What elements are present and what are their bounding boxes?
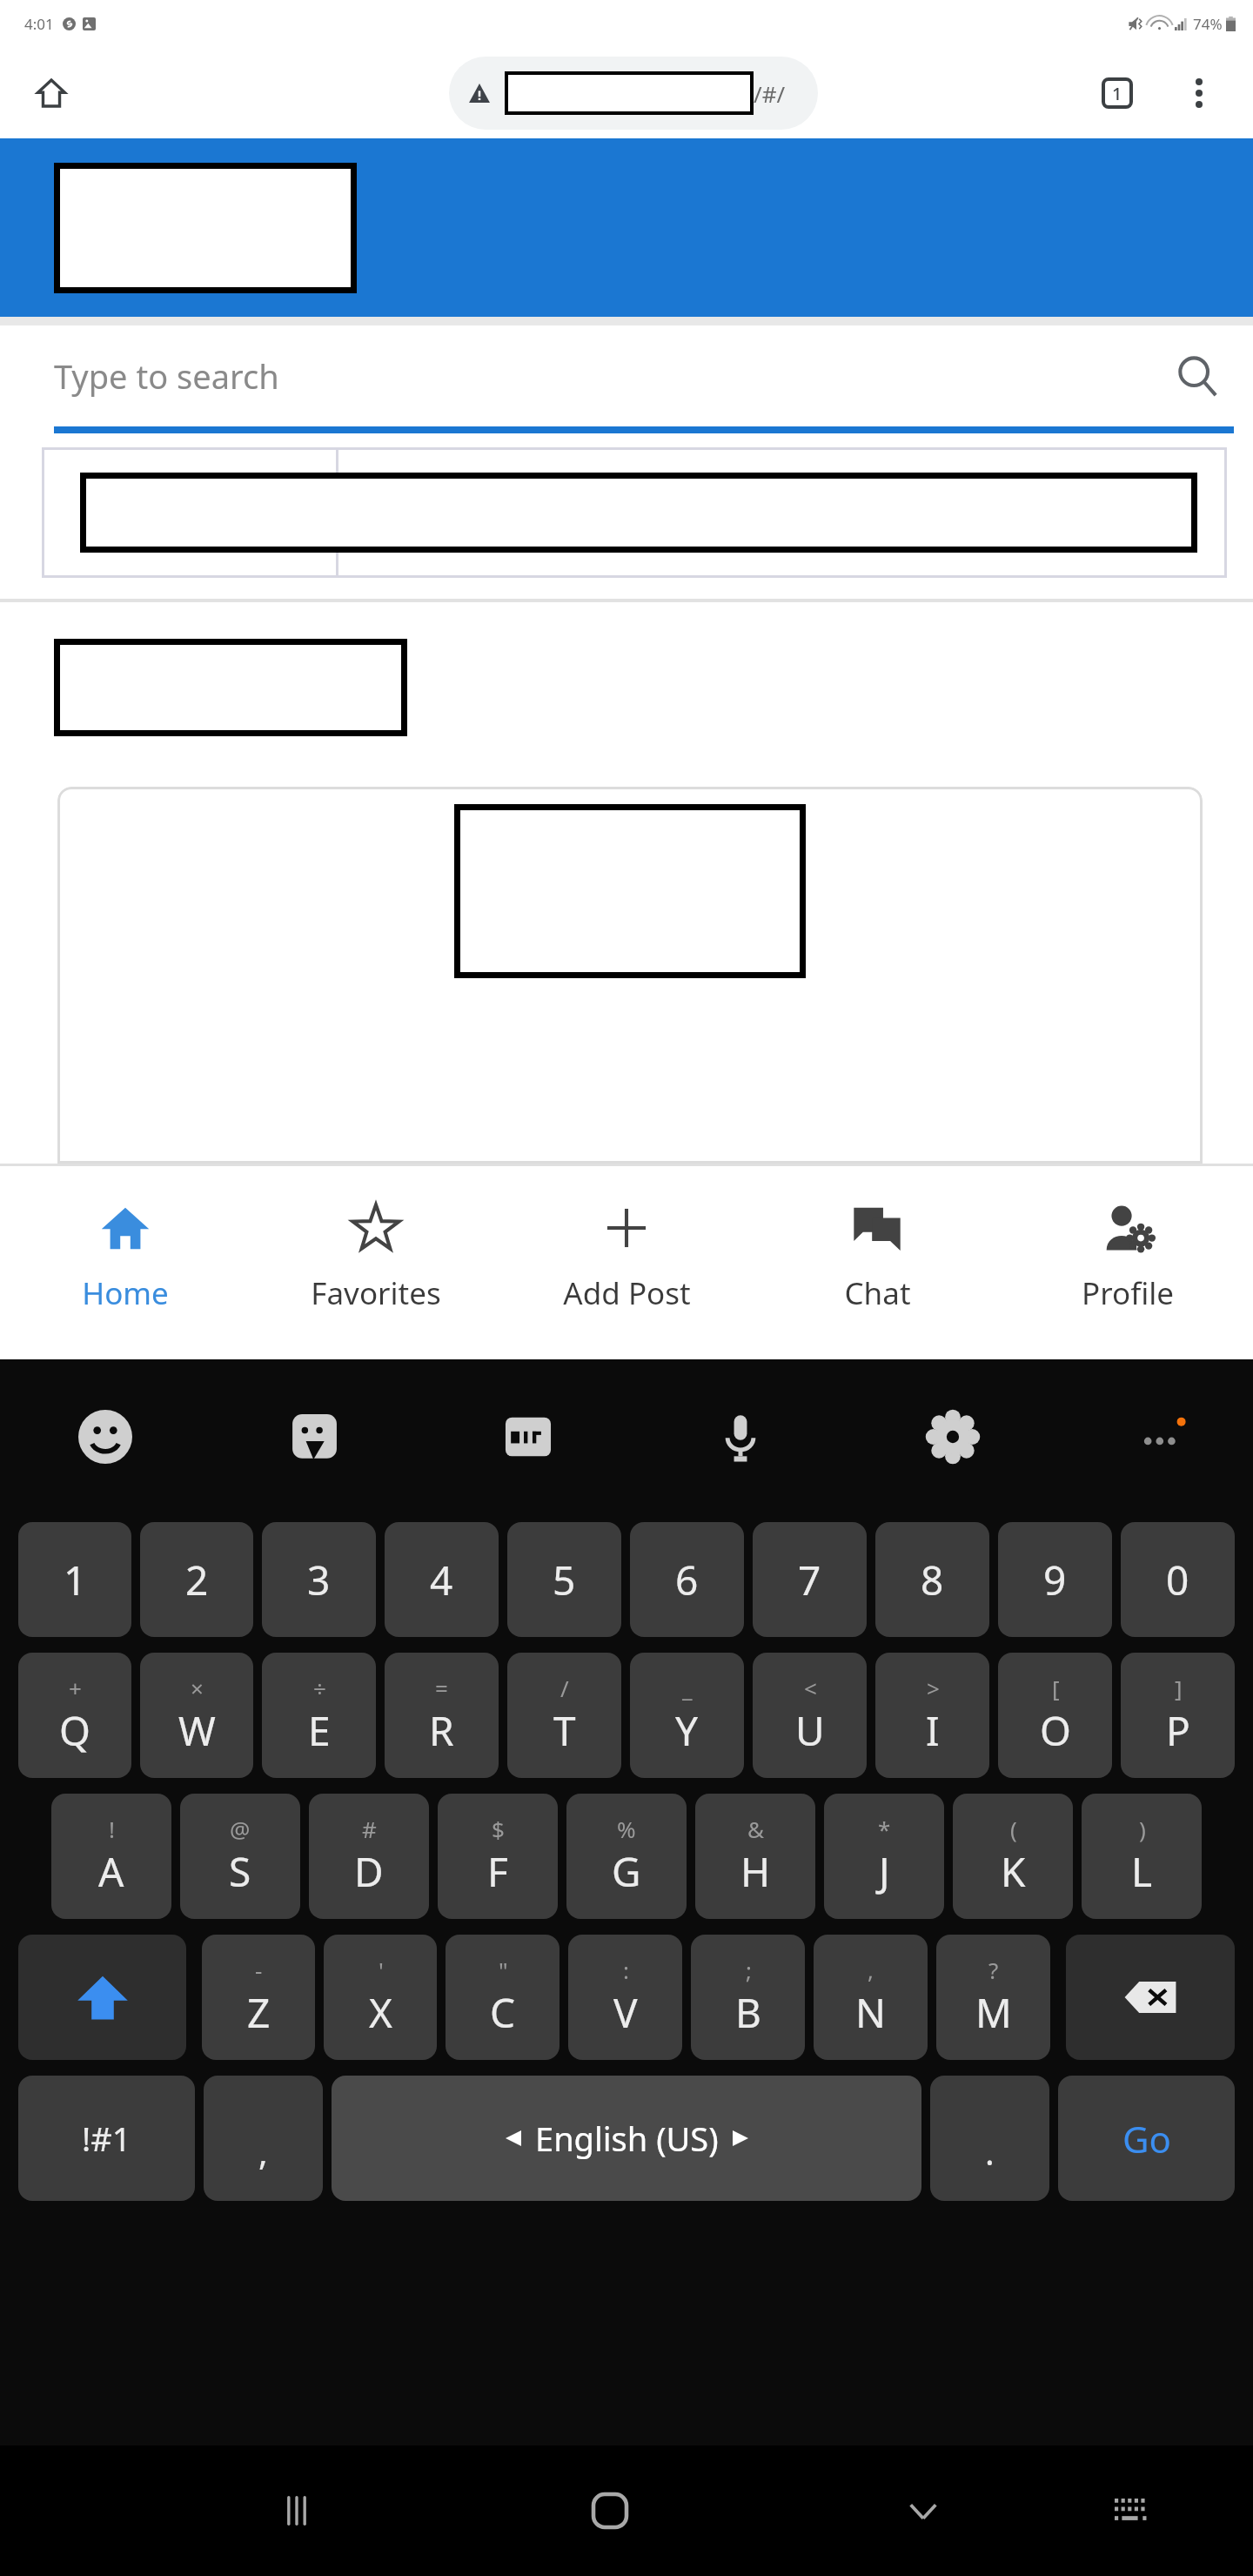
button[interactable]: = <box>385 1653 499 1778</box>
button[interactable]: 9 <box>998 1522 1112 1637</box>
button[interactable]: Add Post <box>501 1166 752 1359</box>
button[interactable]: + <box>18 1653 131 1778</box>
staticText: L <box>1131 1844 1153 1899</box>
button[interactable]: Home <box>28 70 75 117</box>
button[interactable]: Tabs, 1 open <box>1093 69 1142 117</box>
button[interactable]: Favorites <box>251 1166 501 1359</box>
button[interactable]: : <box>568 1935 682 2060</box>
staticText: X <box>369 1985 392 2040</box>
staticText: 6 <box>675 1553 699 1607</box>
button[interactable]: Emoji <box>68 1399 143 1474</box>
staticText: = <box>435 1673 448 1703</box>
button[interactable]: Recents <box>258 2472 336 2550</box>
button[interactable]: * <box>824 1794 944 1919</box>
button[interactable]: Voice input <box>703 1399 778 1474</box>
button[interactable]: ? <box>936 1935 1050 2060</box>
button[interactable]: < <box>753 1653 867 1778</box>
button[interactable]: × <box>140 1653 253 1778</box>
button[interactable]: , <box>814 1935 928 2060</box>
button[interactable]: !#1 <box>18 2076 195 2201</box>
staticText: I <box>926 1703 940 1758</box>
button[interactable]: More options <box>1175 69 1223 117</box>
button[interactable]: Profile <box>1002 1166 1253 1359</box>
button[interactable]: Hide keyboard <box>884 2472 962 2550</box>
staticText: 7 <box>798 1553 821 1607</box>
staticText: _ <box>682 1673 693 1703</box>
button[interactable]: % <box>566 1794 687 1919</box>
button[interactable]: Home <box>0 1166 251 1359</box>
button[interactable]: ] <box>1121 1653 1235 1778</box>
button[interactable]: GIF <box>491 1399 566 1474</box>
staticText: U <box>795 1703 825 1758</box>
button[interactable]: Keyboard settings <box>915 1399 990 1474</box>
button[interactable]: _ <box>630 1653 744 1778</box>
staticText: - <box>255 1955 263 1985</box>
button[interactable]: - <box>202 1935 315 2060</box>
button[interactable]: / <box>507 1653 621 1778</box>
button[interactable]: More <box>1128 1399 1203 1474</box>
staticText: R <box>429 1703 454 1758</box>
button[interactable]: # <box>309 1794 429 1919</box>
button[interactable]: Stickers <box>279 1399 354 1474</box>
button[interactable]: Go <box>1058 2076 1235 2201</box>
staticText: ; <box>746 1955 752 1985</box>
button[interactable]: Home <box>571 2472 649 2550</box>
button[interactable]: 7 <box>753 1522 867 1637</box>
button[interactable]: Switch keyboard <box>1092 2472 1170 2550</box>
staticText: J <box>879 1844 890 1899</box>
button[interactable]: ) <box>1082 1794 1202 1919</box>
button[interactable]: ' <box>324 1935 437 2060</box>
button[interactable]: Shift <box>18 1935 186 2060</box>
button[interactable]: 3 <box>262 1522 376 1637</box>
button[interactable]: Type to search <box>54 325 1218 426</box>
button[interactable]: @ <box>180 1794 300 1919</box>
staticText: 1 <box>1112 82 1122 105</box>
staticText: !#1 <box>82 2116 131 2161</box>
staticText: × <box>191 1673 204 1703</box>
staticText: Add Post <box>563 1272 691 1314</box>
staticText: ) <box>1139 1814 1146 1844</box>
staticText: 9 <box>1043 1553 1067 1607</box>
button[interactable]: Chat <box>752 1166 1002 1359</box>
button[interactable]: $ <box>438 1794 558 1919</box>
staticText: N <box>855 1985 886 2040</box>
button[interactable]: 0 <box>1121 1522 1235 1637</box>
staticText: : <box>623 1955 629 1985</box>
button[interactable]: 8 <box>875 1522 989 1637</box>
button[interactable]: 5 <box>507 1522 621 1637</box>
staticText: Chat <box>844 1272 911 1314</box>
staticText: ( <box>1010 1814 1017 1844</box>
staticText: Q <box>59 1703 90 1758</box>
staticText: ? <box>988 1955 999 1985</box>
staticText: 5 <box>553 1553 576 1607</box>
button[interactable]: /#/ <box>449 57 818 130</box>
button[interactable]: [ <box>998 1653 1112 1778</box>
staticText: Type to search <box>54 353 279 399</box>
staticText: English (US) <box>535 2116 719 2161</box>
staticText: W <box>178 1703 216 1758</box>
button[interactable]: 4 <box>385 1522 499 1637</box>
button[interactable]: ! <box>51 1794 171 1919</box>
button[interactable]: . <box>930 2076 1049 2201</box>
button[interactable]: " <box>446 1935 559 2060</box>
button[interactable]: ; <box>691 1935 805 2060</box>
button[interactable]: 2 <box>140 1522 253 1637</box>
button[interactable]: 1 <box>18 1522 131 1637</box>
button[interactable]: Backspace <box>1066 1935 1235 2060</box>
staticText: M <box>975 1985 1012 2040</box>
staticText: P <box>1166 1703 1190 1758</box>
button[interactable]: English (US) <box>332 2076 921 2201</box>
button[interactable]: ( <box>953 1794 1073 1919</box>
button[interactable]: ÷ <box>262 1653 376 1778</box>
button[interactable] <box>57 787 1203 1164</box>
button[interactable]: 6 <box>630 1522 744 1637</box>
staticText: * <box>878 1814 891 1844</box>
staticText: / <box>560 1673 569 1703</box>
staticText: V <box>613 1985 638 2040</box>
button[interactable]: & <box>695 1794 815 1919</box>
staticText: # <box>362 1814 377 1844</box>
staticText: > <box>927 1673 940 1703</box>
button[interactable]: > <box>875 1653 989 1778</box>
staticText: F <box>487 1844 508 1899</box>
button[interactable]: , <box>204 2076 323 2201</box>
